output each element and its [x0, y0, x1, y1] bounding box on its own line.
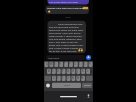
button[interactable]: Return [82, 82, 93, 89]
staticText: Q [46, 62, 49, 66]
staticText: I was wondering how you are and how morn… [49, 22, 84, 54]
button[interactable] [44, 21, 93, 53]
staticText: G [67, 69, 69, 73]
staticText: space [64, 84, 70, 87]
button[interactable]: Space [52, 82, 82, 89]
staticText: C [62, 76, 64, 80]
staticText: R [59, 62, 61, 66]
staticText: T [64, 62, 66, 66]
staticText: A [48, 69, 50, 73]
button[interactable] [44, 5, 93, 14]
button[interactable]: Emoji [44, 82, 52, 89]
staticText: E [54, 62, 56, 66]
button[interactable]: Keyboard row [44, 75, 93, 82]
staticText: D [57, 69, 59, 73]
staticText: Sounds Nice with just a chill vibe [47, 6, 85, 9]
button[interactable]: Keyboard row [44, 61, 93, 68]
staticText: X [57, 76, 59, 80]
staticText: 09:41 [44, 16, 93, 19]
staticText: P [89, 62, 91, 66]
staticText: return [84, 84, 91, 87]
staticText: S [52, 69, 54, 73]
staticText: L [87, 69, 89, 73]
button[interactable]: Microphone [85, 89, 93, 102]
staticText: Z [53, 76, 55, 80]
button[interactable]: Send [86, 55, 91, 60]
staticText: iMessage [48, 56, 60, 59]
staticText: Y [69, 62, 71, 66]
staticText: K [82, 69, 84, 73]
staticText: V [67, 76, 69, 80]
staticText: O [83, 62, 86, 66]
staticText: I [79, 62, 80, 66]
button[interactable]: iMessage [46, 55, 85, 60]
button[interactable]: Keyboard row [44, 68, 93, 75]
staticText: M [81, 76, 84, 80]
staticText: you know when you want [49, 0, 79, 3]
staticText: B [72, 76, 74, 80]
staticText: H [72, 69, 74, 73]
staticText: U [74, 62, 76, 66]
staticText: F [62, 69, 64, 73]
button[interactable] [44, 0, 93, 5]
staticText: N [77, 76, 79, 80]
staticText: W [50, 62, 53, 66]
